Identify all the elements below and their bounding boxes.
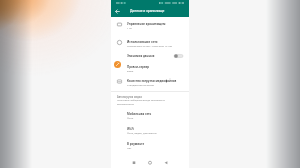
button[interactable]: В роуминге bbox=[111, 139, 189, 152]
staticText: Выкл. bbox=[127, 69, 134, 72]
button[interactable]: Прокси-сервер bbox=[111, 60, 189, 73]
button[interactable]: Wi-Fi bbox=[111, 124, 189, 137]
button[interactable]: Back bbox=[158, 156, 174, 168]
staticText: Экономия данных bbox=[127, 54, 155, 58]
button[interactable]: Мобильная сеть bbox=[111, 109, 189, 122]
staticText: Качество загрузки медиафайлов bbox=[127, 79, 177, 83]
staticText: Фото bbox=[127, 116, 134, 119]
staticText: Данные и хранилище bbox=[130, 9, 165, 13]
staticText: Автозагрузка медиа bbox=[117, 95, 142, 98]
button[interactable]: Home bbox=[142, 156, 158, 168]
button[interactable]: Экономия данных bbox=[111, 50, 189, 60]
staticText: Прокси-сервер bbox=[127, 65, 150, 69]
staticText: Ограничено 20 МБ • Получено 12 МБ bbox=[127, 44, 172, 47]
staticText: 1 ГБ bbox=[127, 26, 132, 29]
staticText: Нет bbox=[127, 146, 132, 149]
staticText: Мобильная сеть bbox=[127, 112, 152, 116]
staticText: Wi-Fi bbox=[127, 127, 135, 131]
staticText: В роуминге bbox=[127, 142, 145, 146]
button[interactable]: Качество загрузки медиафайлов bbox=[111, 76, 189, 89]
staticText: Стандартное качество bbox=[127, 83, 155, 86]
staticText: Управление хранилищем bbox=[127, 22, 166, 26]
staticText: Использование сети bbox=[127, 40, 158, 44]
button[interactable]: Back bbox=[114, 8, 121, 15]
button[interactable]: Recents bbox=[126, 156, 142, 168]
staticText: Фото, видео, документы bbox=[127, 131, 157, 134]
staticText: Голосовые сообщения всегда загружаются а… bbox=[117, 99, 165, 105]
button[interactable]: Управление хранилищем bbox=[111, 19, 189, 32]
button[interactable]: Использование сети bbox=[111, 37, 189, 50]
